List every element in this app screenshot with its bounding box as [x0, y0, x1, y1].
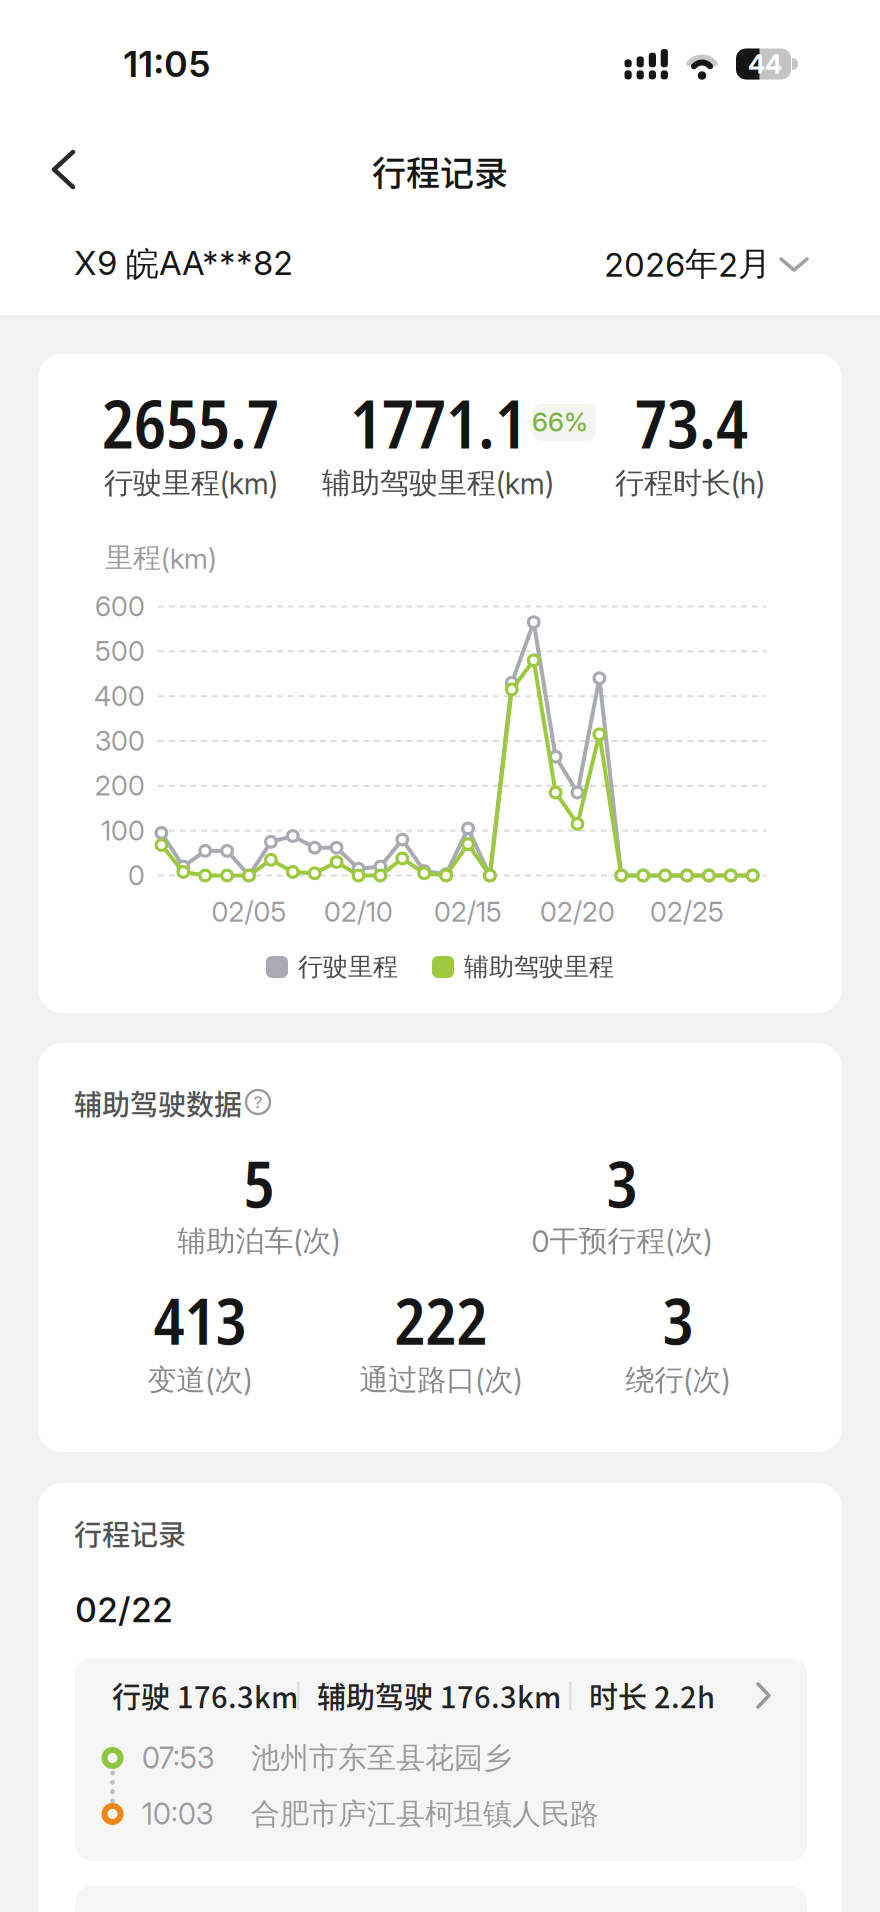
staticText: 行驶里程	[298, 951, 398, 983]
staticText: 里程(km)	[105, 540, 217, 576]
staticText: 44	[748, 48, 782, 80]
staticText: 02/10	[324, 896, 393, 928]
staticText: 5	[243, 1139, 274, 1227]
staticText: 通过路口(次)	[359, 1362, 522, 1398]
staticText: 辅助驾驶里程(km)	[322, 465, 554, 501]
button[interactable]: Back	[31, 134, 101, 204]
staticText: 辅助驾驶 176.3km	[317, 1674, 561, 1716]
staticText: 02/20	[540, 896, 615, 928]
staticText: 07:53	[142, 1740, 214, 1776]
staticText: 行程记录	[74, 1513, 186, 1553]
staticText: 行程时长(h)	[615, 465, 765, 501]
staticText: 02/05	[211, 896, 286, 928]
staticText: 3	[606, 1139, 637, 1227]
button[interactable]: 2026年2月	[604, 239, 808, 289]
staticText: |	[566, 1681, 573, 1710]
staticText: 200	[95, 769, 145, 802]
staticText: 66%	[532, 406, 588, 438]
staticText: 02/22	[75, 1589, 173, 1630]
staticText: 1771.1	[350, 378, 527, 468]
staticText: 02/15	[434, 896, 502, 928]
staticText: 行驶里程(km)	[104, 465, 278, 501]
staticText: 辅助驾驶里程	[464, 951, 614, 983]
staticText: |	[294, 1681, 301, 1710]
staticText: 3	[662, 1276, 693, 1364]
staticText: 辅助驾驶数据	[74, 1083, 242, 1123]
staticText: 413	[153, 1276, 246, 1364]
staticText: 100	[101, 814, 145, 847]
staticText: X9 皖AA***82	[74, 243, 293, 285]
staticText: 73.4	[635, 378, 748, 468]
button[interactable]: 辅助驾驶数据说明	[236, 1080, 280, 1124]
staticText: 池州市东至县花园乡	[251, 1740, 512, 1776]
staticText: 11:05	[123, 42, 211, 86]
staticText: 行驶 176.3km	[112, 1674, 298, 1716]
staticText: 600	[95, 590, 145, 623]
staticText: 辅助泊车(次)	[177, 1223, 340, 1259]
staticText: 绕行(次)	[625, 1362, 730, 1398]
staticText: 222	[394, 1276, 487, 1364]
staticText: ?	[253, 1092, 262, 1112]
staticText: 变道(次)	[147, 1362, 252, 1398]
staticText: 02/25	[650, 896, 724, 928]
staticText: 合肥市庐江县柯坦镇人民路	[251, 1796, 599, 1832]
staticText: 行程记录	[372, 146, 508, 196]
button[interactable]: 行驶 176.3km	[75, 1658, 807, 1861]
staticText: 0干预行程(次)	[531, 1223, 712, 1259]
staticText: 10:03	[142, 1796, 213, 1832]
staticText: 400	[94, 680, 145, 713]
staticText: 500	[95, 635, 145, 668]
staticText: 0	[128, 859, 145, 892]
staticText: 时长 2.2h	[589, 1674, 715, 1716]
staticText: 2026年2月	[604, 243, 771, 285]
staticText: 300	[95, 725, 145, 757]
staticText: 2655.7	[102, 378, 279, 468]
